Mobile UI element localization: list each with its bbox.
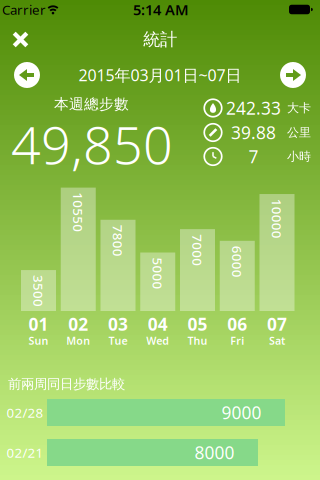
staticText: 7 [248, 145, 258, 168]
staticText: 7000 [181, 241, 213, 259]
staticText: 02 [68, 312, 88, 335]
button[interactable] [14, 62, 40, 88]
staticText: 02/28 [6, 404, 43, 421]
staticText: 07 [267, 312, 287, 335]
button[interactable] [280, 62, 306, 88]
staticText: 5000 [142, 265, 174, 282]
staticText: 242.33 [226, 96, 281, 119]
staticText: 02/21 [6, 444, 43, 461]
button[interactable] [5, 24, 35, 54]
staticText: 8000 [194, 441, 234, 464]
staticText: 39.88 [231, 121, 276, 144]
staticText: Mon [66, 333, 90, 348]
staticText: 2015年03月01日~07日 [78, 64, 241, 86]
staticText: 49,850 [11, 109, 173, 179]
staticText: 01 [28, 312, 48, 335]
staticText: 05 [187, 312, 207, 335]
staticText: 統計 [143, 29, 177, 50]
staticText: 公里 [287, 125, 311, 140]
staticText: 大卡 [287, 101, 311, 115]
staticText: 本週總步數 [54, 95, 129, 113]
staticText: Carrier [2, 1, 46, 18]
staticText: 7800 [102, 232, 134, 250]
staticText: Thu [187, 333, 207, 348]
staticText: 10550 [58, 203, 98, 221]
staticText: 9000 [221, 401, 261, 424]
staticText: Sun [28, 333, 48, 348]
staticText: 04 [148, 312, 168, 335]
staticText: Fri [230, 333, 244, 348]
staticText: 10000 [257, 210, 297, 228]
staticText: Tue [108, 333, 127, 348]
staticText: 小時 [287, 149, 311, 164]
staticText: 5:14 AM [133, 0, 189, 19]
staticText: Wed [146, 333, 169, 348]
staticText: 3500 [22, 282, 54, 300]
staticText: Sat [269, 333, 285, 348]
staticText: 06 [227, 312, 247, 335]
staticText: 6000 [221, 253, 253, 271]
staticText: 前兩周同日步數比較 [8, 376, 125, 392]
staticText: 03 [108, 312, 128, 335]
